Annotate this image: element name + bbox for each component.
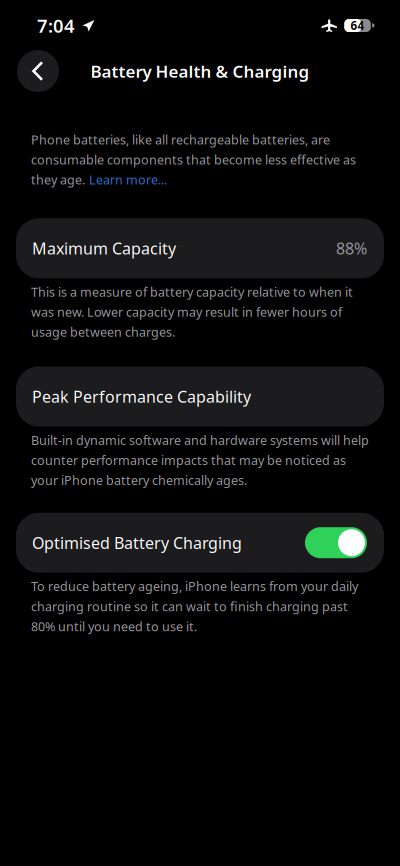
staticText: Optimised Battery Charging xyxy=(32,532,242,554)
staticText: 7:04 xyxy=(37,13,75,38)
button[interactable]: Maximum Capacity xyxy=(16,218,384,278)
staticText: counter performance impacts that may be … xyxy=(31,452,346,469)
staticText: your iPhone battery chemically ages. xyxy=(31,472,247,489)
staticText: 88% xyxy=(336,237,367,259)
staticText: usage between charges. xyxy=(31,323,175,340)
staticText: 64 xyxy=(351,18,365,33)
staticText: 80% until you need to use it. xyxy=(31,618,197,635)
staticText: consumable components that become less e… xyxy=(31,151,356,168)
button[interactable]: Back xyxy=(17,50,59,92)
staticText: Phone batteries, like all rechargeable b… xyxy=(31,131,330,148)
staticText: was new. Lower capacity may result in fe… xyxy=(31,303,342,320)
button[interactable]: Peak Performance Capability xyxy=(16,366,384,426)
staticText: This is a measure of battery capacity re… xyxy=(31,283,353,300)
staticText: Maximum Capacity xyxy=(32,237,176,259)
staticText: Battery Health & Charging xyxy=(90,59,309,83)
button[interactable]: Learn more... xyxy=(89,171,167,188)
staticText: Peak Performance Capability xyxy=(32,386,251,407)
staticText: Built-in dynamic software and hardware s… xyxy=(31,431,369,449)
staticText: To reduce battery ageing, iPhone learns … xyxy=(31,578,358,595)
staticText: charging routine so it can wait to finis… xyxy=(31,598,348,615)
staticText: Learn more... xyxy=(89,171,167,188)
staticText: they age. xyxy=(31,171,85,188)
button[interactable]: Optimised Battery Charging xyxy=(16,513,384,573)
